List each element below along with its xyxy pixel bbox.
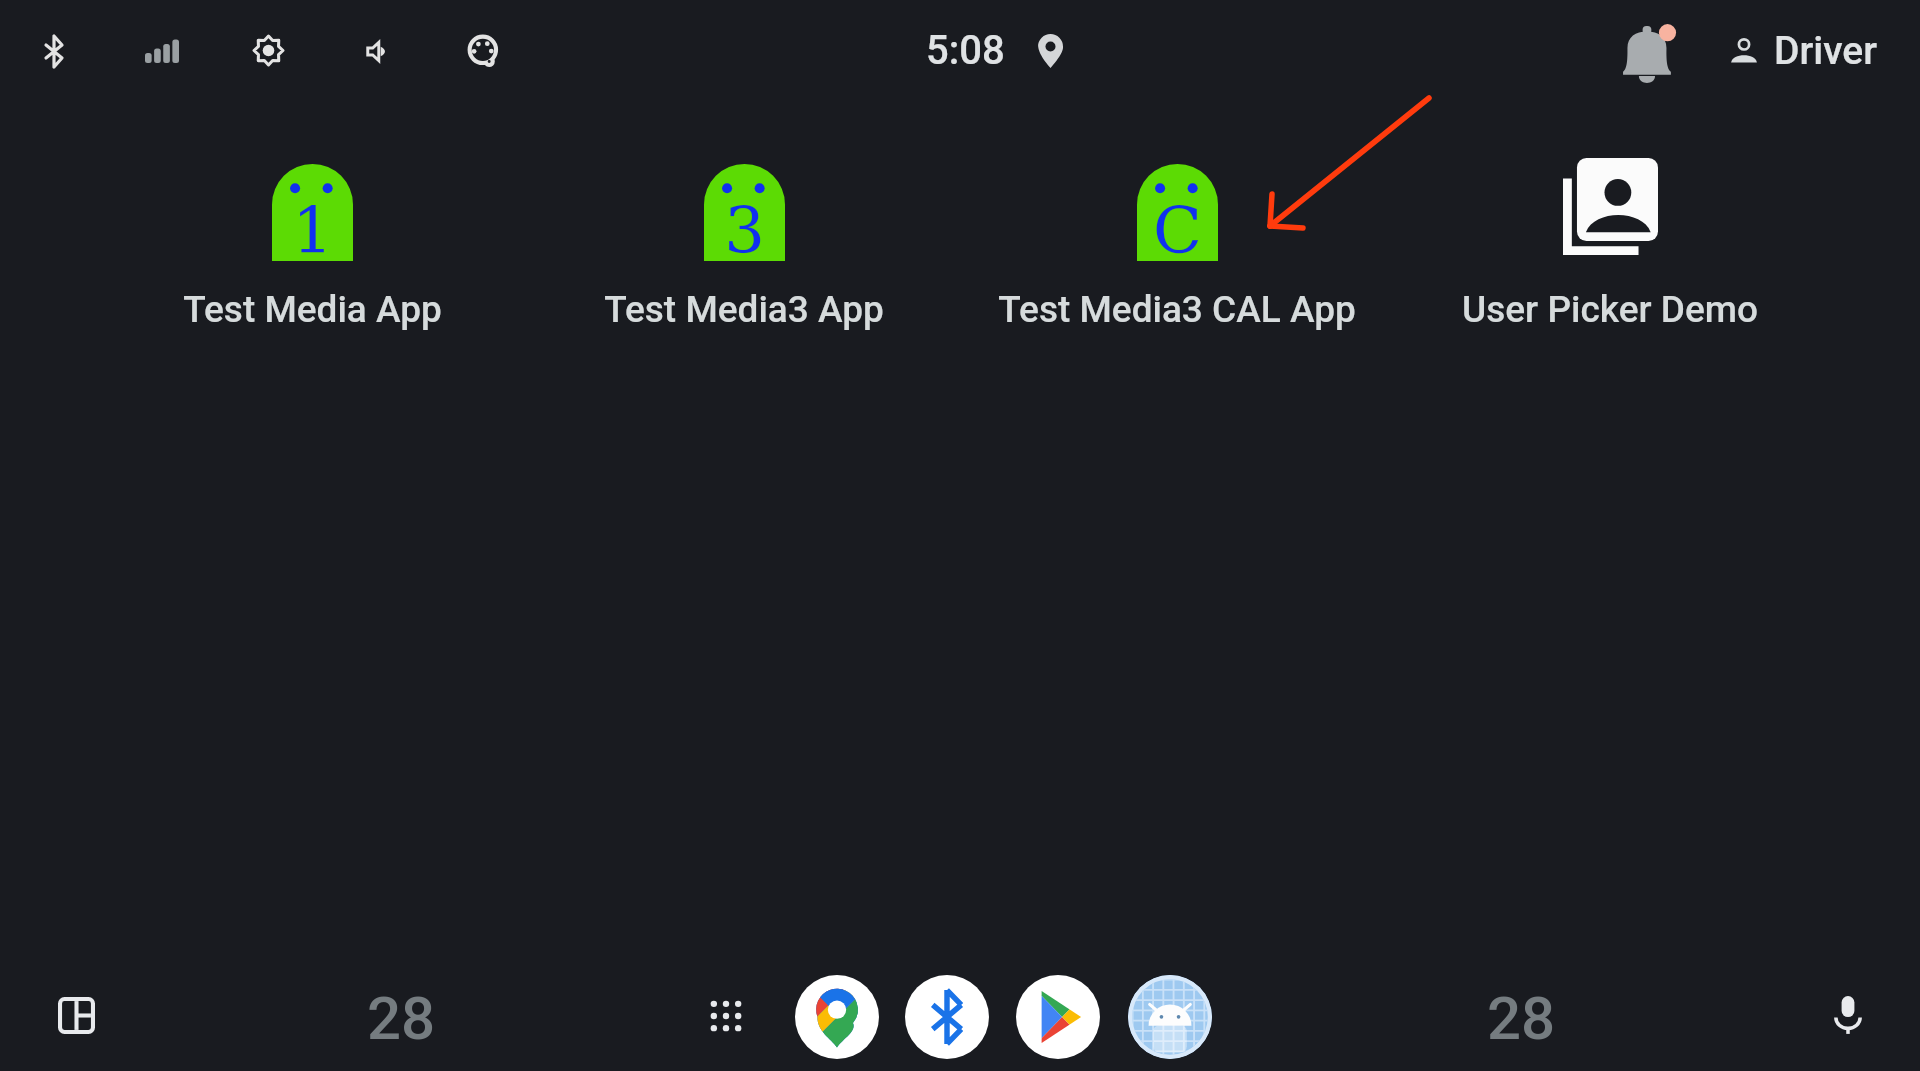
button[interactable]: Android: [1128, 975, 1212, 1059]
button[interactable]: Play Store: [1016, 975, 1100, 1059]
button[interactable]: User Picker Demo: [1420, 158, 1800, 344]
staticText: C: [1153, 194, 1202, 258]
button[interactable]: Voice assistant: [1832, 994, 1864, 1036]
staticText: Driver: [1774, 28, 1877, 74]
button[interactable]: 28: [1482, 983, 1560, 1045]
staticText: 5:08: [926, 27, 1005, 74]
button[interactable]: Theme: [467, 35, 500, 68]
staticText: Test Media App: [183, 288, 442, 331]
button[interactable]: 28: [362, 983, 440, 1045]
button[interactable]: Layout: [58, 997, 95, 1034]
button[interactable]: 1: [122, 158, 502, 344]
button[interactable]: Volume: [367, 42, 386, 61]
button[interactable]: Brightness: [254, 36, 283, 65]
button[interactable]: 3: [554, 158, 934, 344]
staticText: 3: [724, 194, 765, 258]
button[interactable]: All apps: [710, 1000, 742, 1032]
staticText: 28: [1487, 983, 1556, 1045]
button[interactable]: Bluetooth: [905, 975, 989, 1059]
staticText: Test Media3 App: [604, 288, 884, 331]
button[interactable]: Maps: [795, 975, 879, 1059]
button[interactable]: Notifications: [1622, 24, 1674, 84]
button[interactable]: Bluetooth: [44, 36, 64, 67]
staticText: User Picker Demo: [1462, 288, 1758, 331]
button[interactable]: Driver: [1729, 22, 1877, 80]
staticText: 28: [367, 983, 436, 1045]
staticText: 1: [292, 194, 333, 258]
staticText: Test Media3 CAL App: [998, 288, 1356, 331]
button[interactable]: C: [987, 158, 1367, 344]
button[interactable]: Location: [1038, 34, 1063, 68]
button[interactable]: 5:08: [926, 26, 1005, 74]
button[interactable]: Signal: [145, 34, 179, 63]
